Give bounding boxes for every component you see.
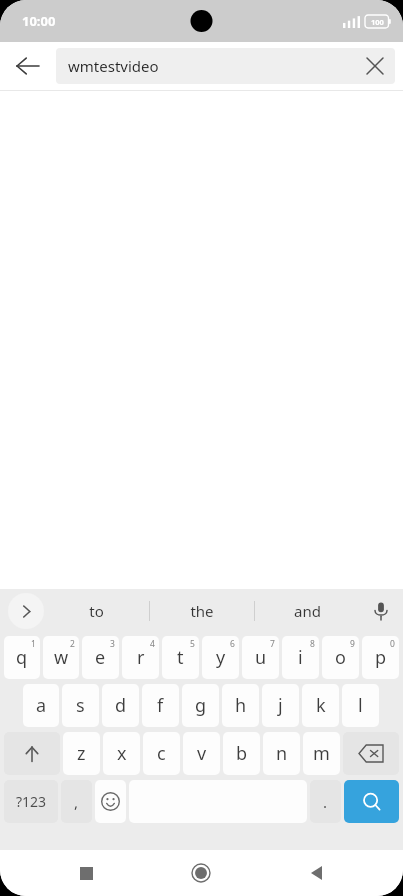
staticText: 1 xyxy=(31,638,36,650)
button[interactable]: Backspace xyxy=(343,732,399,775)
staticText: h xyxy=(235,693,247,718)
button[interactable]: b xyxy=(223,732,260,775)
button[interactable]: Back xyxy=(288,850,344,896)
button[interactable]: l xyxy=(342,684,379,727)
button[interactable]: Shift xyxy=(4,732,60,775)
button[interactable]: s xyxy=(62,684,99,727)
staticText: 7 xyxy=(270,638,275,650)
button[interactable]: e xyxy=(82,636,119,679)
staticText: z xyxy=(77,741,86,766)
button[interactable]: to xyxy=(44,589,149,633)
staticText: 8 xyxy=(310,638,315,650)
button[interactable]: u xyxy=(242,636,279,679)
staticText: n xyxy=(276,741,288,766)
staticText: a xyxy=(36,693,47,718)
button[interactable]: ?123 xyxy=(4,780,58,823)
button[interactable]: w xyxy=(43,636,79,679)
button[interactable]: x xyxy=(103,732,140,775)
button[interactable]: y xyxy=(202,636,239,679)
button[interactable]: m xyxy=(303,732,340,775)
button[interactable]: q xyxy=(4,636,40,679)
staticText: i xyxy=(298,645,303,670)
staticText: m xyxy=(313,741,330,766)
staticText: k xyxy=(316,693,326,718)
staticText: 0 xyxy=(390,638,395,650)
button[interactable]: . xyxy=(310,780,341,823)
button[interactable]: More suggestions xyxy=(8,593,44,629)
button[interactable]: Home xyxy=(173,850,229,896)
staticText: y xyxy=(216,645,226,670)
button[interactable]: Back xyxy=(0,42,56,90)
button[interactable]: f xyxy=(142,684,179,727)
staticText: f xyxy=(157,693,164,718)
staticText: 9 xyxy=(350,638,355,650)
staticText: w xyxy=(54,645,69,670)
button[interactable]: Clear xyxy=(355,48,395,84)
staticText: b xyxy=(236,741,248,766)
staticText: 3 xyxy=(110,638,115,650)
staticText: q xyxy=(16,645,28,670)
staticText: j xyxy=(278,693,283,718)
staticText: t xyxy=(177,645,184,670)
staticText: wmtestvideo xyxy=(68,56,355,76)
button[interactable]: c xyxy=(143,732,180,775)
staticText: o xyxy=(335,645,346,670)
staticText: x xyxy=(117,741,127,766)
staticText: 5 xyxy=(190,638,195,650)
button[interactable]: v xyxy=(183,732,220,775)
button[interactable]: , xyxy=(61,780,92,823)
button[interactable]: r xyxy=(122,636,159,679)
staticText: to xyxy=(89,601,104,621)
staticText: 6 xyxy=(230,638,235,650)
staticText: l xyxy=(358,693,363,718)
staticText: e xyxy=(95,645,106,670)
staticText: c xyxy=(157,741,166,766)
staticText: the xyxy=(190,601,214,621)
staticText: v xyxy=(197,741,207,766)
staticText: p xyxy=(375,645,387,670)
button[interactable]: d xyxy=(102,684,139,727)
staticText: and xyxy=(294,601,321,621)
staticText: r xyxy=(137,645,145,670)
button[interactable]: n xyxy=(263,732,300,775)
button[interactable]: wmtestvideo xyxy=(56,48,395,84)
button[interactable]: t xyxy=(162,636,199,679)
button[interactable]: Emoji xyxy=(95,780,126,823)
staticText: 4 xyxy=(150,638,155,650)
button[interactable]: and xyxy=(255,589,359,633)
staticText: d xyxy=(115,693,127,718)
button[interactable]: p xyxy=(362,636,399,679)
button[interactable]: k xyxy=(302,684,339,727)
button[interactable]: z xyxy=(63,732,100,775)
staticText: 100 xyxy=(371,17,384,27)
staticText: . xyxy=(323,792,328,812)
staticText: s xyxy=(76,693,85,718)
staticText: ?123 xyxy=(16,792,47,811)
button[interactable]: j xyxy=(262,684,299,727)
staticText: 2 xyxy=(70,638,75,650)
button[interactable]: i xyxy=(282,636,319,679)
button[interactable]: Recents xyxy=(58,850,114,896)
button[interactable]: a xyxy=(23,684,59,727)
staticText: , xyxy=(74,792,79,812)
staticText: u xyxy=(255,645,267,670)
button[interactable]: Search xyxy=(344,780,399,823)
staticText: 10:00 xyxy=(22,12,56,30)
staticText: g xyxy=(195,693,207,718)
button[interactable]: g xyxy=(182,684,219,727)
button[interactable]: the xyxy=(150,589,254,633)
button[interactable]: o xyxy=(322,636,359,679)
button[interactable]: Voice input xyxy=(359,589,403,633)
button[interactable]: h xyxy=(222,684,259,727)
